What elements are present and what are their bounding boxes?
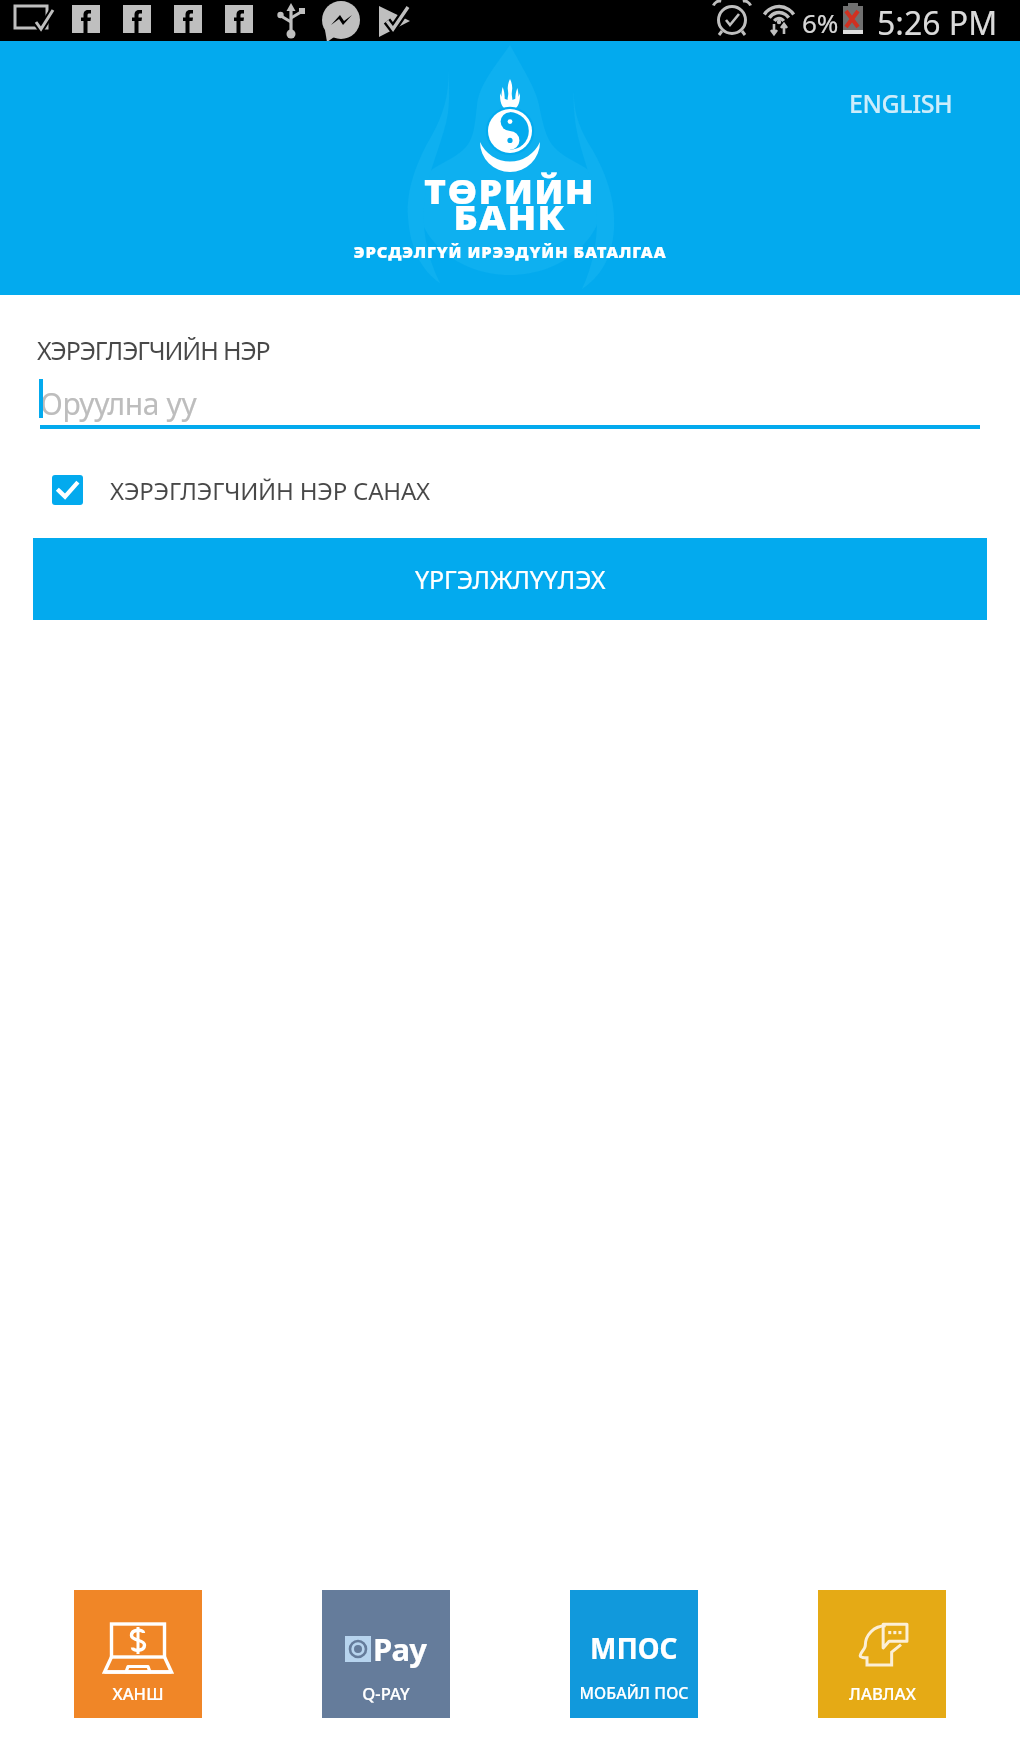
button[interactable]: Switch language to English bbox=[831, 72, 971, 134]
staticText: Оруулна уу bbox=[40, 383, 197, 424]
button[interactable]: ХЭРЭГЛЭГЧИЙН НЭР САНАХ bbox=[0, 458, 1020, 522]
staticText: ХАНШ bbox=[112, 1682, 164, 1705]
staticText: ЛАВЛАХ bbox=[849, 1682, 916, 1705]
button[interactable]: Pay bbox=[322, 1590, 450, 1718]
staticText: ENGLISH bbox=[849, 86, 953, 120]
staticText: Q-PAY bbox=[362, 1682, 410, 1705]
button[interactable]: User name input bbox=[0, 372, 1020, 430]
button[interactable]: ҮРГЭЛЖЛҮҮЛЭХ bbox=[33, 538, 987, 620]
staticText: ХЭРЭГЛЭГЧИЙН НЭР САНАХ bbox=[110, 474, 430, 507]
staticText: 6% bbox=[802, 5, 839, 40]
staticText: 5:26 PM bbox=[877, 1, 998, 42]
staticText: ЭРСДЭЛГҮЙ ИРЭЭДҮЙН БАТАЛГАА bbox=[354, 242, 667, 262]
staticText: МПОС bbox=[590, 1629, 678, 1667]
staticText: ТӨРИЙН bbox=[424, 169, 596, 214]
button[interactable]: МПОС bbox=[570, 1590, 698, 1718]
staticText: Pay bbox=[373, 1628, 427, 1670]
button[interactable]: ХАНШ bbox=[74, 1590, 202, 1718]
staticText: БАНК bbox=[453, 195, 566, 240]
staticText: ҮРГЭЛЖЛҮҮЛЭХ bbox=[415, 562, 606, 596]
staticText: ХЭРЭГЛЭГЧИЙН НЭР bbox=[37, 333, 270, 367]
staticText: МОБАЙЛ ПОС bbox=[579, 1682, 689, 1704]
button[interactable]: ЛАВЛАХ bbox=[818, 1590, 946, 1718]
